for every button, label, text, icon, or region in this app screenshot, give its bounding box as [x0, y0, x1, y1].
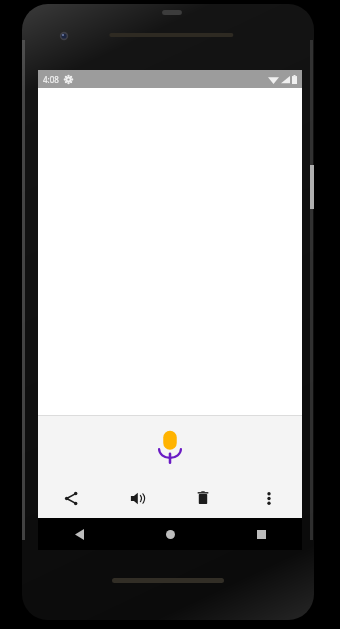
button[interactable]: More options — [236, 478, 302, 518]
button[interactable]: Home — [157, 521, 183, 547]
button[interactable]: Record — [153, 427, 187, 467]
button[interactable]: Share — [38, 478, 104, 518]
button[interactable]: Delete — [170, 478, 236, 518]
button[interactable]: Recent apps — [248, 521, 274, 547]
button[interactable]: Back — [66, 521, 92, 547]
staticText: 4:08 — [43, 74, 59, 85]
button[interactable]: Volume — [104, 478, 170, 518]
